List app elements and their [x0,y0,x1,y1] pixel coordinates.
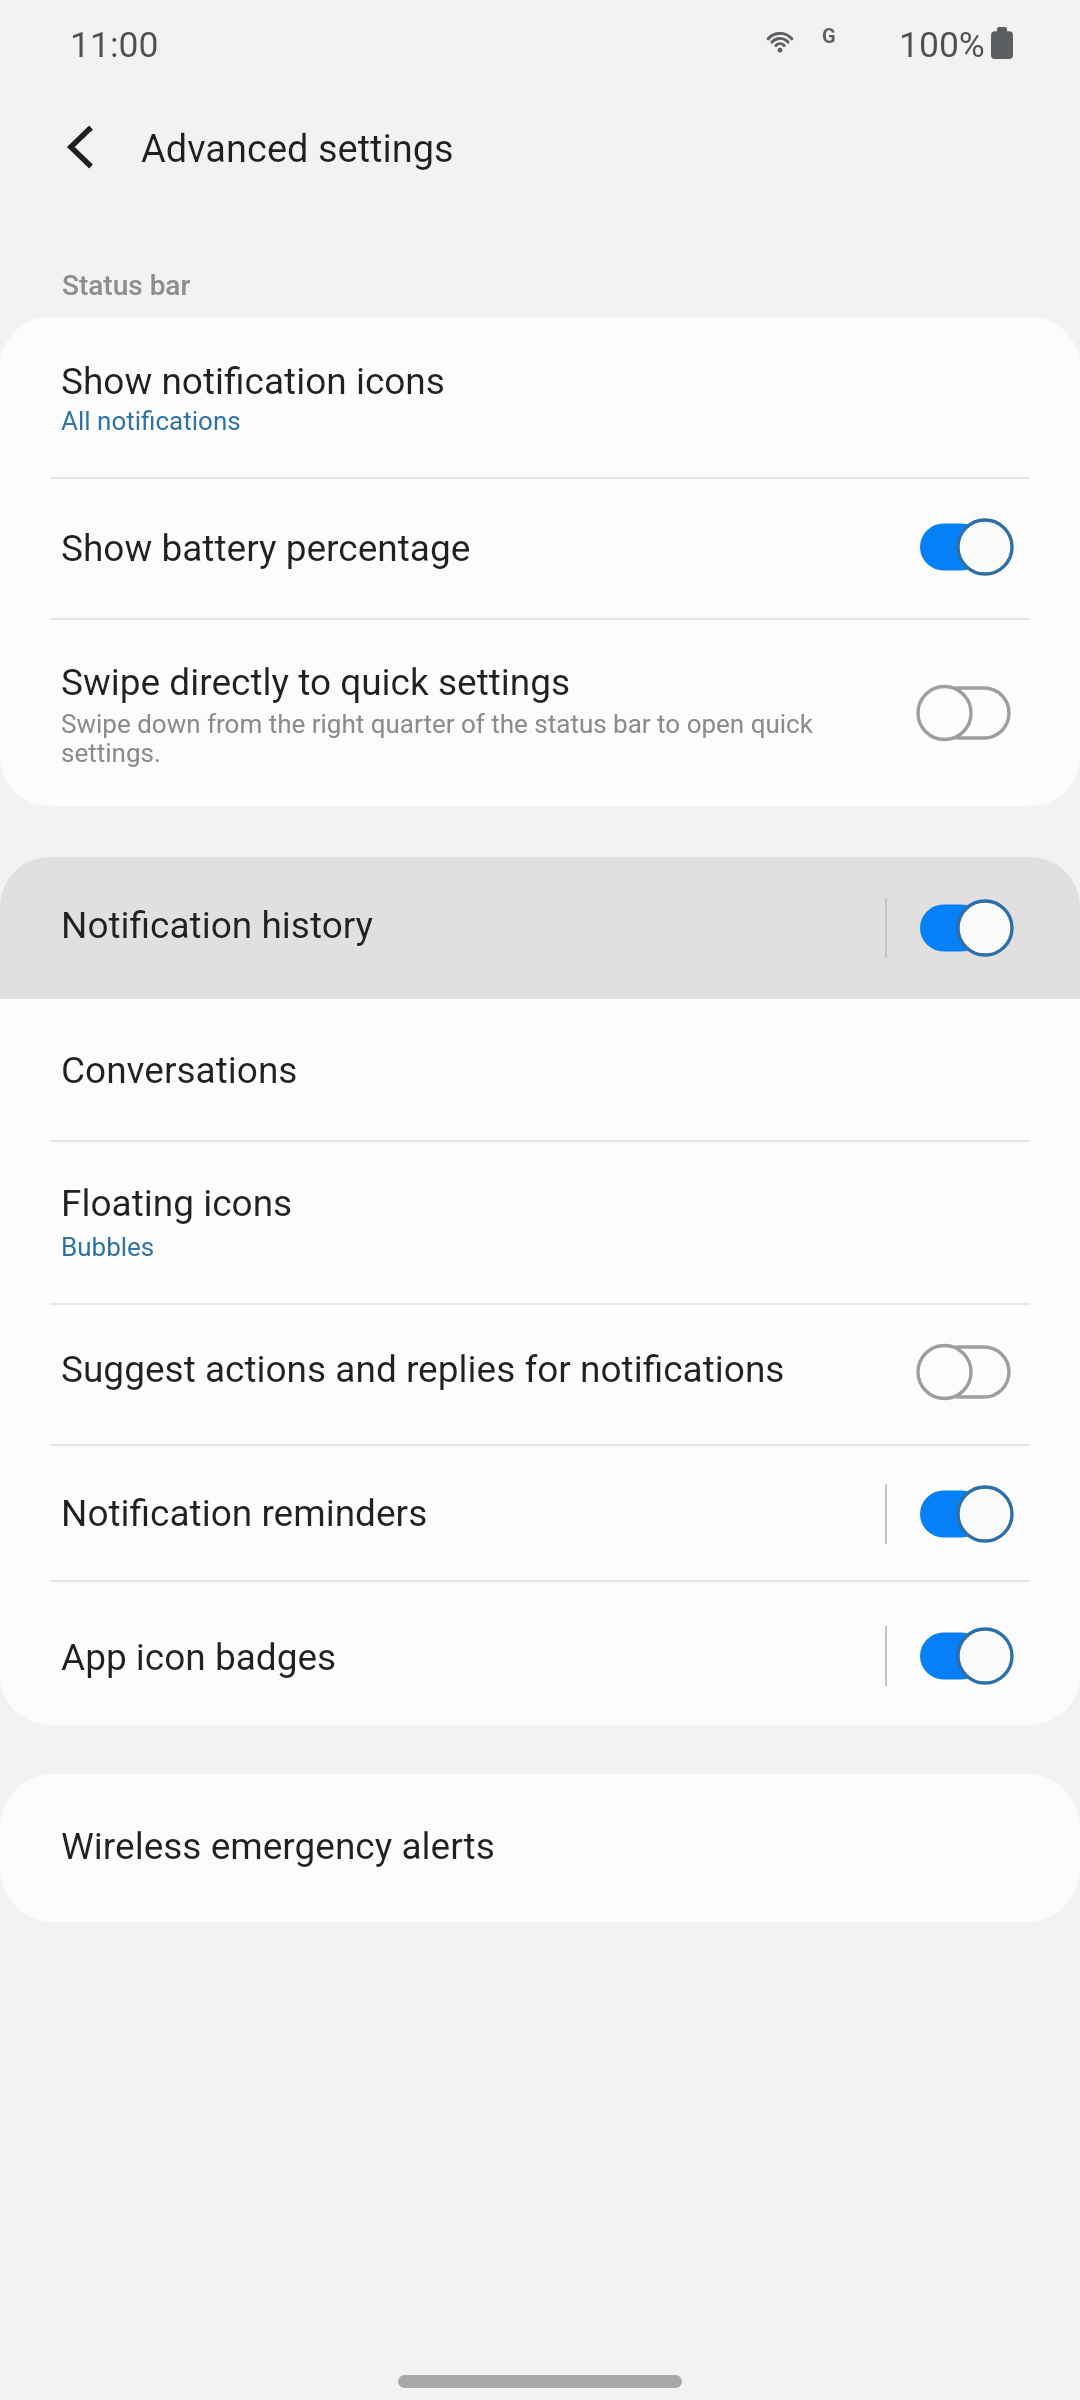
staticText: Show notification icons [61,358,445,403]
staticText: 100% [899,23,985,66]
button[interactable]: Floating icons [0,1142,1080,1303]
button[interactable]: Wireless emergency alerts [0,1774,1080,1922]
staticText: G [822,24,836,48]
button[interactable]: App icon badges [0,1582,1080,1725]
staticText: All notifications [61,407,241,436]
staticText: Bubbles [61,1233,155,1262]
staticText: Suggest actions and replies for notifica… [61,1346,785,1391]
staticText: Swipe down from the right quarter of the… [61,710,813,768]
staticText: Notification history [61,902,374,947]
button[interactable]: On [917,516,1012,578]
staticText: Show battery percentage [61,525,471,570]
staticText: Wireless emergency alerts [61,1823,495,1868]
button[interactable]: Back [27,92,137,202]
staticText: Swipe directly to quick settings [61,659,571,704]
staticText: Status bar [62,268,191,302]
button[interactable]: On [917,897,1012,959]
button[interactable]: Conversations [0,999,1080,1140]
button[interactable]: Show battery percentage [0,479,1080,618]
button[interactable]: Notification reminders [0,1446,1080,1580]
button[interactable]: Off [917,682,1012,744]
staticText: 11:00 [70,23,159,66]
button[interactable]: Notification history [0,857,1080,999]
button[interactable]: Suggest actions and replies for notifica… [0,1305,1080,1444]
button[interactable]: Swipe directly to quick settings [0,620,1080,806]
staticText: App icon badges [61,1634,337,1679]
button[interactable]: On [917,1625,1012,1687]
staticText: Conversations [61,1047,298,1092]
staticText: Floating icons [61,1180,293,1225]
button[interactable]: Show notification icons [0,317,1080,477]
staticText: Notification reminders [61,1490,428,1535]
button[interactable]: Off [917,1341,1012,1403]
button[interactable]: On [917,1483,1012,1545]
staticText: Advanced settings [141,125,454,171]
